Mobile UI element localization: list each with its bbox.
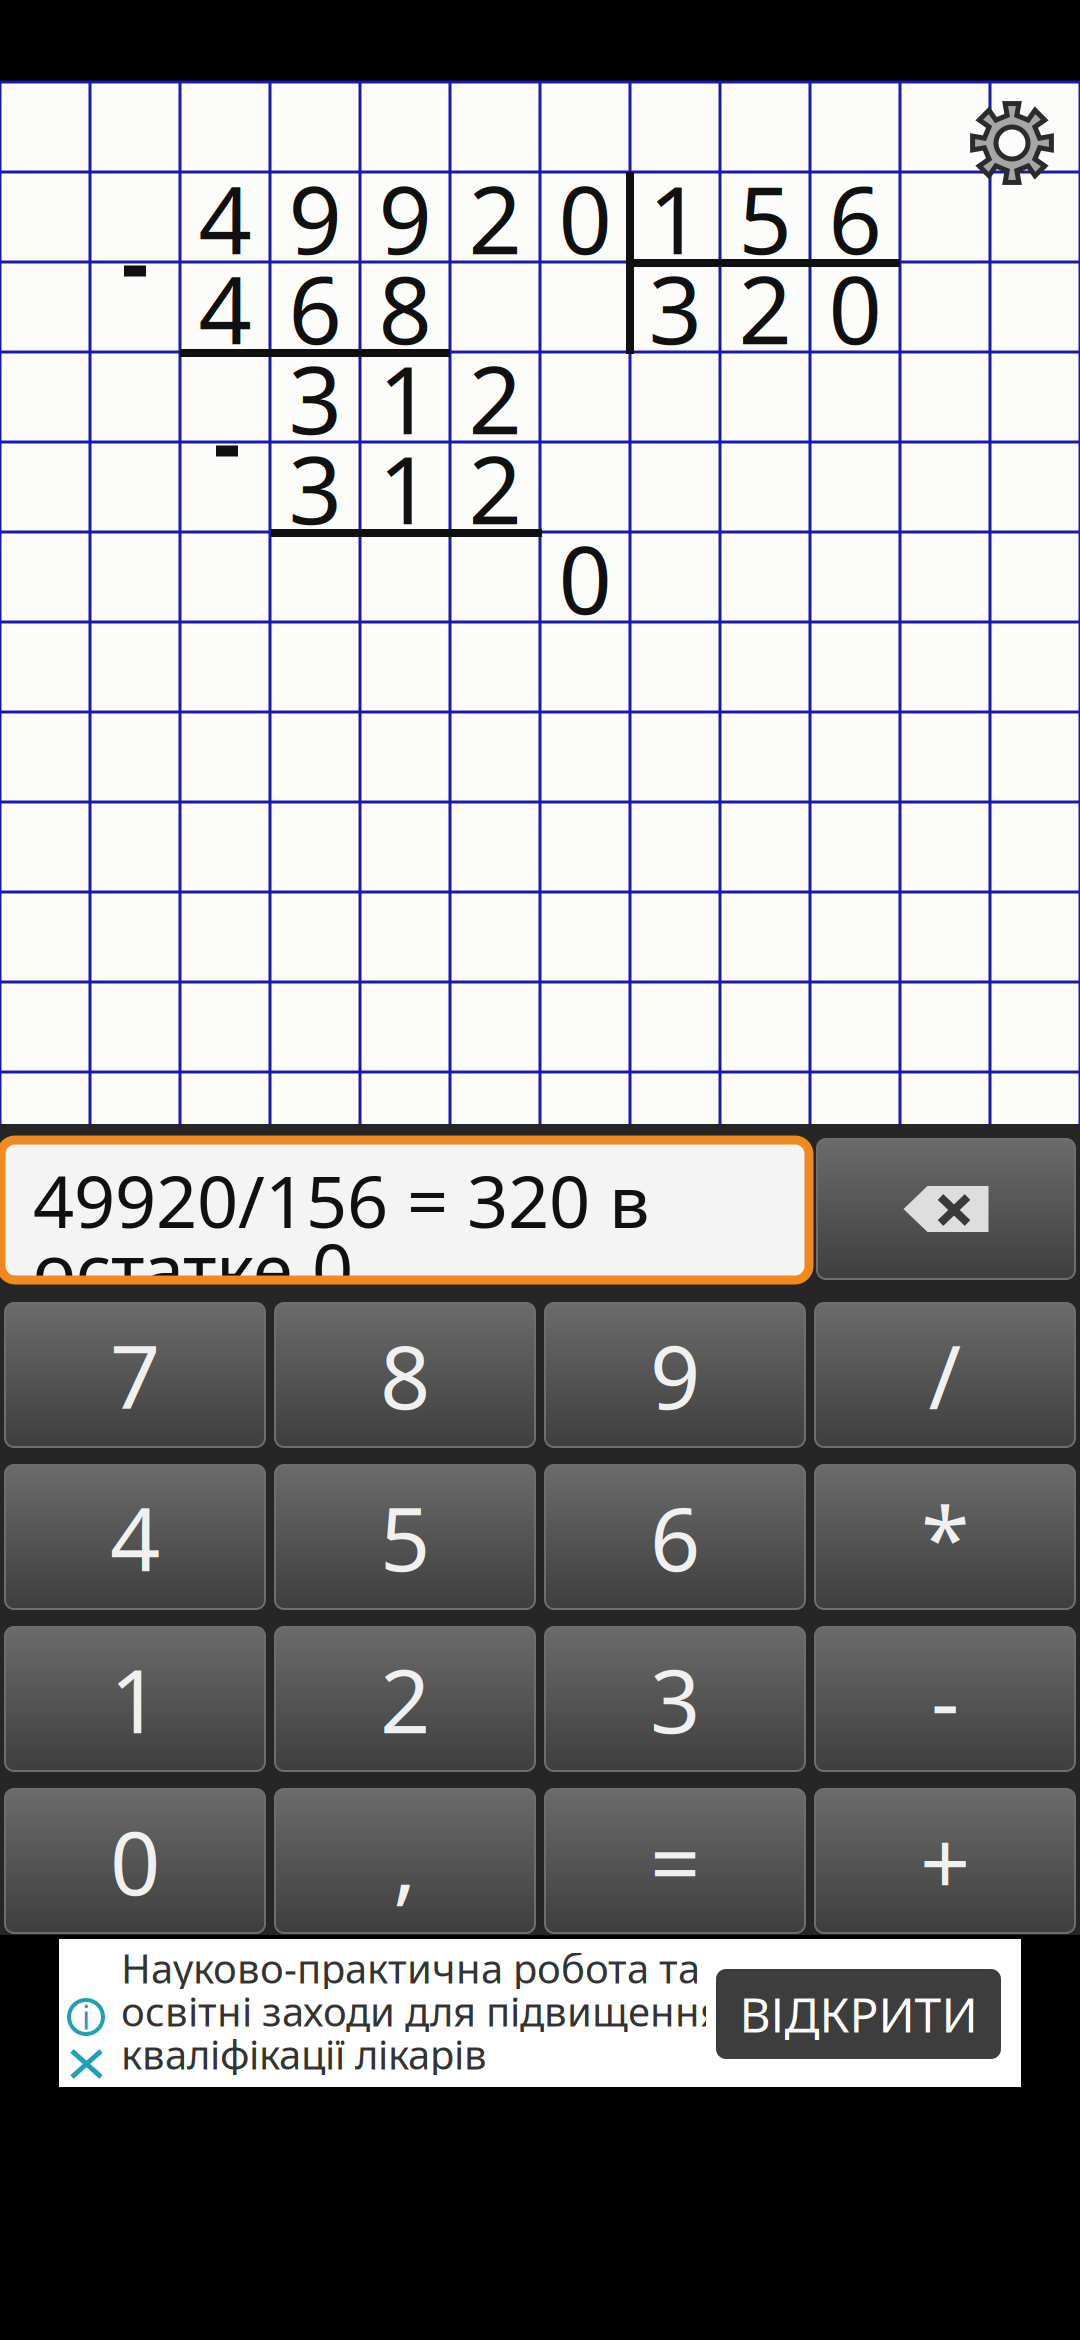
button[interactable]: 6 [545,1465,805,1609]
button[interactable]: - [815,1627,1075,1771]
staticText: 9 [288,156,341,280]
staticText: 6 [288,246,341,370]
button[interactable]: Settings [968,99,1056,187]
button[interactable]: 8 [275,1303,535,1447]
button[interactable]: 7 [5,1303,265,1447]
staticText: 6 [650,1479,700,1595]
button[interactable]: 4 [5,1465,265,1609]
staticText: = [650,1803,700,1919]
button[interactable]: 9 [545,1303,805,1447]
staticText: * [921,1479,969,1595]
staticText: 3 [288,426,341,550]
staticText: 1 [110,1641,160,1757]
button[interactable]: 1 [5,1627,265,1771]
staticText: 5 [738,156,791,280]
staticText: освітні заходи для підвищення [121,1984,723,2037]
staticText: 3 [648,246,701,370]
button[interactable]: 2 [275,1627,535,1771]
staticText: 7 [110,1317,160,1433]
staticText: , [393,1803,417,1919]
staticText: 0 [828,246,881,370]
staticText: + [920,1803,970,1919]
staticText: 4 [110,1479,160,1595]
staticText: 9 [650,1317,700,1433]
button[interactable]: * [815,1465,1075,1609]
button[interactable]: 3 [545,1627,805,1771]
staticText: / [928,1317,961,1433]
staticText: i [82,1996,90,2038]
staticText: - [931,1641,959,1757]
staticText: 3 [288,336,341,460]
staticText: 49920/156 = 320 в [33,1152,650,1248]
staticText: 1 [378,426,431,550]
button[interactable]: = [545,1789,805,1933]
staticText: 4 [198,156,251,280]
staticText: 1 [378,336,431,460]
staticText: 2 [380,1641,430,1757]
button[interactable]: Backspace [817,1139,1075,1279]
staticText: 2 [738,246,791,370]
button[interactable]: , [275,1789,535,1933]
staticText: 6 [828,156,881,280]
staticText: 0 [558,156,611,280]
staticText: Науково-практична робота та [121,1941,700,1994]
button[interactable]: / [815,1303,1075,1447]
staticText: 3 [650,1641,700,1757]
button[interactable]: i [59,1939,1021,2087]
staticText: 8 [380,1317,430,1433]
button[interactable]: + [815,1789,1075,1933]
staticText: 2 [468,156,521,280]
staticText: 5 [380,1479,430,1595]
staticText: 9 [378,156,431,280]
staticText: 0 [558,516,611,640]
staticText: ВІДКРИТИ [739,1982,977,2046]
staticText: 4 [198,246,251,370]
staticText: 1 [648,156,701,280]
staticText: 8 [378,246,431,370]
staticText: кваліфікації лікарів [121,2027,487,2080]
button[interactable]: 5 [275,1465,535,1609]
staticText: 0 [110,1803,160,1919]
staticText: 2 [468,336,521,460]
button[interactable]: 0 [5,1789,265,1933]
staticText: 2 [468,426,521,550]
staticText: остатке 0 [33,1220,353,1316]
